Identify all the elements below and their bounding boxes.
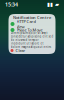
staticText: ▮▮ ▰ [47, 1, 59, 8]
staticText: 15:34 [5, 1, 18, 8]
staticText: HTTP Card View [16, 19, 35, 29]
staticText: Phase To Move [16, 27, 42, 33]
staticText: Clear [15, 48, 25, 53]
staticText: Notification Centre [13, 15, 51, 20]
staticText: Lorem ipsum dolor sit amet consectetur a… [10, 31, 53, 49]
